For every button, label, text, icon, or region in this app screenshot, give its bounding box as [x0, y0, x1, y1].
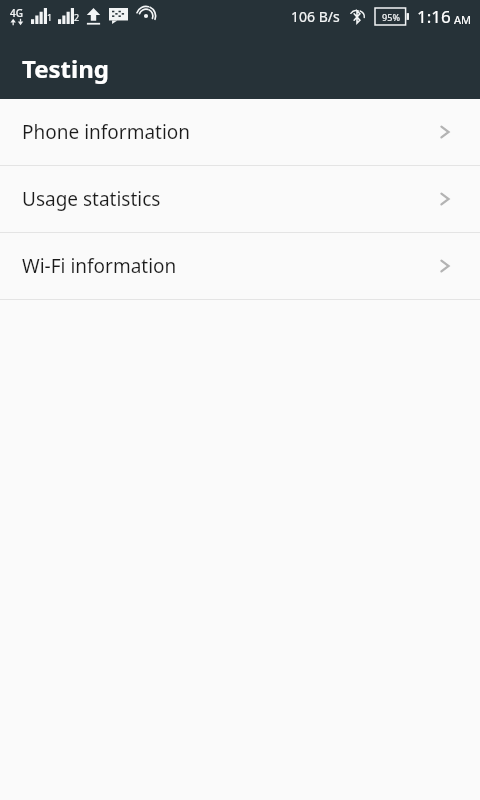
staticText: Testing [22, 52, 109, 85]
staticText: Wi-Fi information [22, 253, 436, 279]
staticText: Phone information [22, 119, 436, 145]
staticText: 4G [10, 6, 23, 20]
staticText: Usage statistics [22, 186, 436, 212]
button[interactable]: Usage statistics [0, 166, 480, 232]
button[interactable]: Wi-Fi information [0, 233, 480, 299]
staticText: 1 [47, 11, 53, 23]
staticText: 2 [74, 11, 80, 23]
staticText: AM [454, 12, 472, 27]
button[interactable]: Phone information [0, 99, 480, 165]
staticText: 1:16 [417, 5, 451, 28]
staticText: 95% [382, 11, 400, 23]
staticText: 106 B/s [291, 7, 340, 26]
